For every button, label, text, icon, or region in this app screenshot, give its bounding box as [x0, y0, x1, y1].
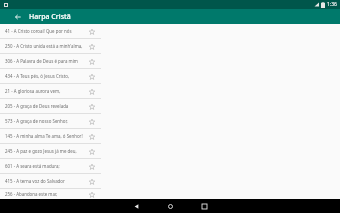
button[interactable]: 245 - A paz e gozo Jesus já me deu,: [0, 144, 101, 158]
button[interactable]: 256 - Abandona este mar,: [0, 189, 101, 199]
staticText: 306 - A Palavra de Deus é para mim: [5, 58, 78, 64]
staticText: Harpa Cristã: [29, 12, 71, 22]
staticText: 434 - A Teus pés, ó Jesus Cristo,: [5, 73, 70, 79]
staticText: 21 - A gloriosa aurora vem,: [5, 88, 61, 94]
button[interactable]: 205 - A graça de Deus revelada: [0, 99, 101, 113]
button[interactable]: Favorite: [87, 72, 96, 81]
staticText: 41 - A Cristo coroai! Que por nós: [5, 28, 72, 34]
button[interactable]: 21 - A gloriosa aurora vem,: [0, 84, 101, 98]
button[interactable]: Favorite: [87, 42, 96, 51]
button[interactable]: 573 - A graça de nosso Senhor,: [0, 114, 101, 128]
staticText: 250 - A Cristo unida está a minh'alma,: [5, 43, 83, 49]
staticText: 573 - A graça de nosso Senhor,: [5, 118, 68, 124]
button[interactable]: Favorite: [87, 117, 96, 126]
staticText: 145 - A minha alma Te ama, ó Senhor!: [5, 133, 83, 139]
button[interactable]: Favorite: [87, 147, 96, 156]
staticText: 415 - A terna voz do Salvador: [5, 178, 65, 184]
staticText: 256 - Abandona este mar,: [5, 191, 58, 197]
button[interactable]: 415 - A terna voz do Salvador: [0, 174, 101, 188]
button[interactable]: Favorite: [87, 57, 96, 66]
button[interactable]: 434 - A Teus pés, ó Jesus Cristo,: [0, 69, 101, 83]
button[interactable]: Back: [126, 199, 146, 213]
button[interactable]: 306 - A Palavra de Deus é para mim: [0, 54, 101, 68]
staticText: 245 - A paz e gozo Jesus já me deu,: [5, 148, 77, 154]
button[interactable]: Favorite: [87, 190, 96, 199]
button[interactable]: Favorite: [87, 132, 96, 141]
button[interactable]: 250 - A Cristo unida está a minh'alma,: [0, 39, 101, 53]
button[interactable]: Favorite: [87, 27, 96, 36]
button[interactable]: Favorite: [87, 102, 96, 111]
staticText: 601 - A seara está madura;: [5, 163, 60, 169]
button[interactable]: 41 - A Cristo coroai! Que por nós: [0, 24, 101, 38]
button[interactable]: Back: [12, 11, 24, 23]
button[interactable]: Favorite: [87, 87, 96, 96]
staticText: 1:36: [327, 1, 337, 8]
button[interactable]: Favorite: [87, 162, 96, 171]
button[interactable]: Recent apps: [194, 199, 214, 213]
button[interactable]: 601 - A seara está madura;: [0, 159, 101, 173]
button[interactable]: Favorite: [87, 177, 96, 186]
button[interactable]: 145 - A minha alma Te ama, ó Senhor!: [0, 129, 101, 143]
button[interactable]: Home: [160, 199, 180, 213]
staticText: 205 - A graça de Deus revelada: [5, 103, 69, 109]
